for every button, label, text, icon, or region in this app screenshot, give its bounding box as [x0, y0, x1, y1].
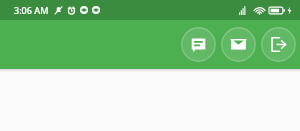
staticText: 3:06 AM [14, 4, 49, 16]
button[interactable]: Messages [181, 27, 216, 62]
button[interactable]: Mail [221, 27, 256, 62]
button[interactable]: Log out [261, 27, 296, 62]
